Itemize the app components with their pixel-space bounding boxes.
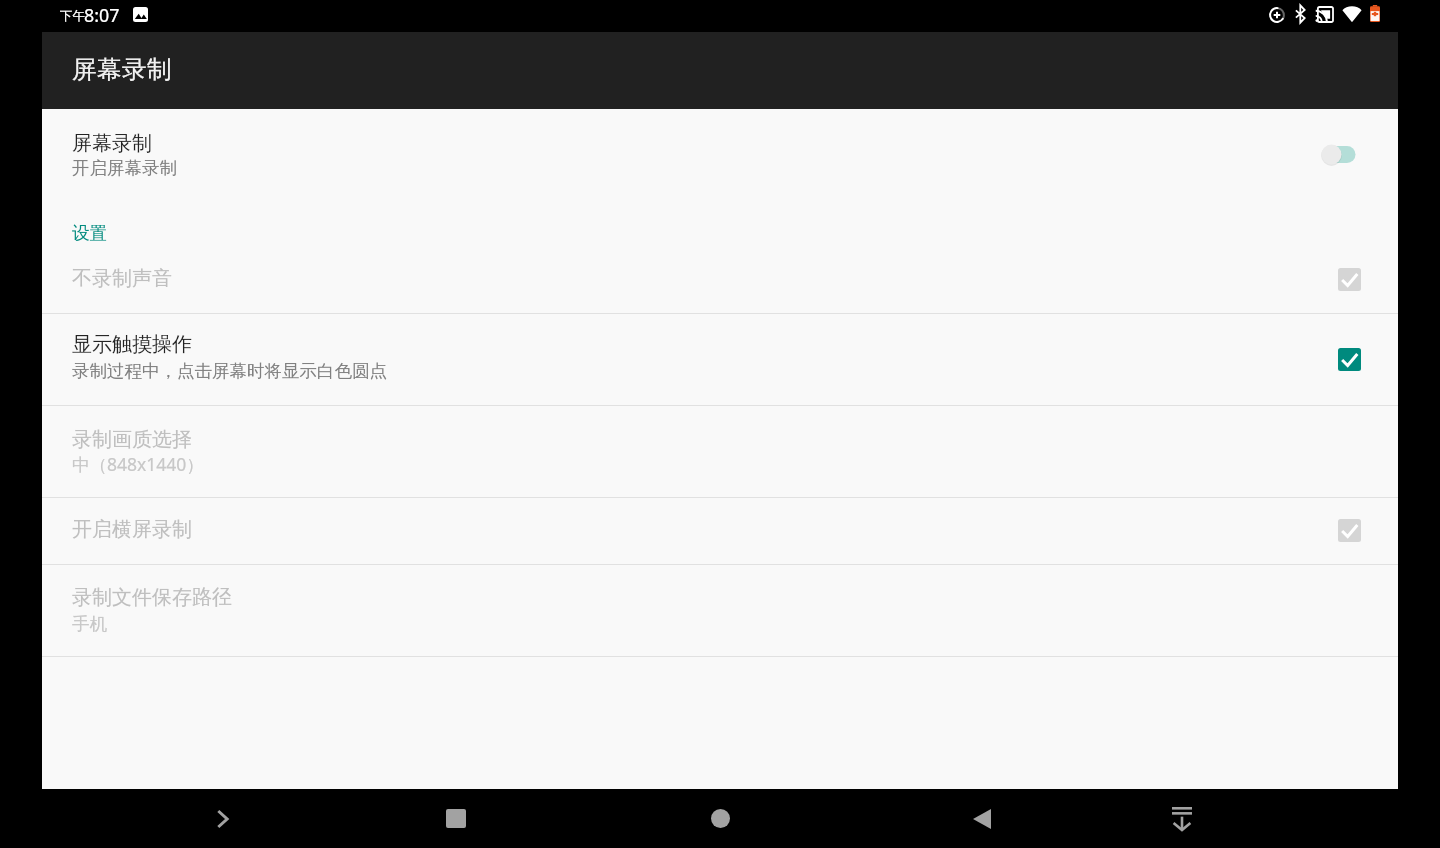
button[interactable]: 开启横屏录制 xyxy=(42,498,1398,564)
staticText: 显示触摸操作 xyxy=(72,332,192,357)
button[interactable]: 屏幕录制 xyxy=(42,109,1398,201)
staticText: 开启横屏录制 xyxy=(72,517,192,542)
staticText: 8:07 xyxy=(84,3,120,27)
staticText: 屏幕录制 xyxy=(72,54,172,85)
button[interactable]: 隐藏导航栏 xyxy=(1152,789,1212,848)
staticText: 不录制声音 xyxy=(72,266,172,291)
button[interactable]: 不录制声音 xyxy=(42,252,1398,313)
staticText: 中（848x1440） xyxy=(72,452,204,476)
staticText: 录制文件保存路径 xyxy=(72,585,232,610)
button[interactable]: 屏幕录制开关，已关闭 xyxy=(1321,144,1357,165)
button[interactable]: 复选框，已选中（不可用） xyxy=(1338,268,1361,291)
other: 蓝牙 xyxy=(1295,5,1306,23)
button[interactable]: 主屏幕 xyxy=(690,789,750,848)
staticText: 手机 xyxy=(72,613,107,635)
staticText: 录制过程中，点击屏幕时将显示白色圆点 xyxy=(72,360,387,382)
button[interactable]: 复选框，已选中（不可用） xyxy=(1338,519,1361,542)
button[interactable]: 录制画质选择 xyxy=(42,406,1398,497)
button[interactable]: 复选框，已选中 xyxy=(1338,348,1361,371)
other: 勿扰模式 xyxy=(1269,7,1285,23)
staticText: 屏幕录制 xyxy=(72,131,152,156)
button[interactable]: 显示触摸操作 xyxy=(42,314,1398,405)
staticText: 设置 xyxy=(72,222,107,244)
other: 投屏 xyxy=(1315,7,1333,22)
button[interactable]: 返回 xyxy=(952,789,1012,848)
staticText: 录制画质选择 xyxy=(72,427,192,452)
staticText: 下午 xyxy=(60,8,85,24)
button[interactable]: 展开 xyxy=(192,789,252,848)
other: 电池 xyxy=(1370,5,1380,22)
button[interactable]: 录制文件保存路径 xyxy=(42,565,1398,656)
staticText: 开启屏幕录制 xyxy=(72,157,177,179)
button[interactable]: 最近任务 xyxy=(426,789,486,848)
other: Wi-Fi xyxy=(1342,6,1362,22)
